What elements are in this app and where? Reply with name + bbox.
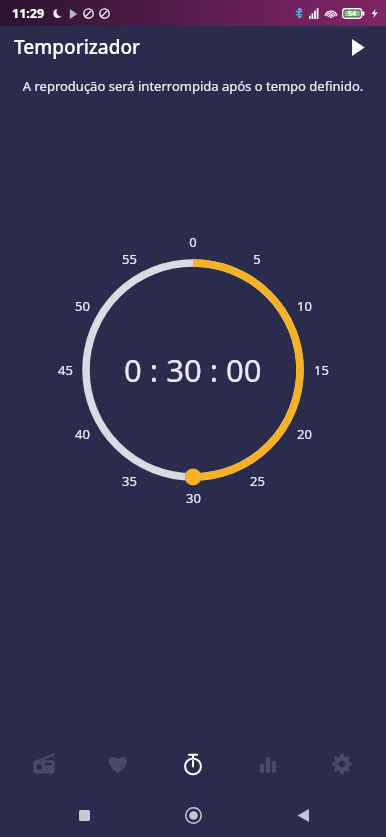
- staticText: 45: [58, 361, 73, 379]
- staticText: 5: [253, 250, 261, 268]
- button[interactable]: Início: [167, 793, 219, 837]
- button[interactable]: Recentes: [58, 793, 110, 837]
- button[interactable]: Temporizador: [162, 735, 224, 793]
- staticText: 15: [314, 361, 329, 379]
- staticText: 11:29: [12, 5, 45, 22]
- staticText: 10: [297, 297, 312, 315]
- button[interactable]: Seletor de tempo: [58, 235, 328, 505]
- button[interactable]: Voltar: [277, 793, 329, 837]
- button[interactable]: Iniciar: [338, 28, 376, 66]
- staticText: 25: [250, 472, 265, 490]
- staticText: 40: [75, 425, 90, 443]
- staticText: 50: [75, 297, 90, 315]
- staticText: 30: [186, 489, 201, 507]
- staticText: 0 : 30 : 00: [124, 349, 262, 391]
- staticText: 20: [297, 425, 312, 443]
- button[interactable]: Favoritos: [87, 735, 149, 793]
- button[interactable]: Definições: [311, 735, 373, 793]
- button[interactable]: Rádio: [13, 735, 75, 793]
- staticText: Temporizador: [14, 34, 141, 60]
- staticText: 55: [122, 250, 137, 268]
- button[interactable]: Estatísticas: [237, 735, 299, 793]
- staticText: A reprodução será interrompida após o te…: [10, 77, 376, 95]
- staticText: 35: [122, 472, 137, 490]
- staticText: 0: [189, 233, 197, 251]
- staticText: 54: [348, 9, 357, 19]
